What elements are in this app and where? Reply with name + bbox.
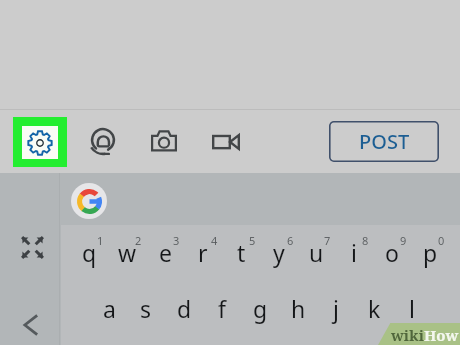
staticText: d	[177, 293, 192, 324]
button[interactable]: t	[222, 228, 260, 276]
staticText: 1	[97, 233, 104, 248]
button[interactable]: s	[127, 280, 165, 326]
staticText: 8	[362, 233, 369, 248]
staticText: wiki	[391, 325, 424, 345]
staticText: o	[385, 237, 399, 268]
button[interactable]: d	[165, 280, 203, 326]
button[interactable]: Expand keyboard	[13, 228, 51, 266]
staticText: 7	[324, 233, 331, 248]
staticText: u	[309, 237, 324, 268]
staticText: 6	[287, 233, 294, 248]
button[interactable]: h	[279, 280, 317, 326]
staticText: j	[333, 293, 339, 324]
staticText: a	[103, 293, 116, 324]
staticText: 9	[400, 233, 407, 248]
staticText: t	[237, 237, 246, 268]
button[interactable]: g	[241, 280, 279, 326]
button[interactable]: l	[393, 280, 431, 326]
staticText: i	[351, 237, 357, 268]
button[interactable]: Take photo	[147, 124, 181, 158]
staticText: 4	[211, 233, 218, 248]
button[interactable]: k	[355, 280, 393, 326]
staticText: f	[218, 293, 226, 324]
staticText: s	[140, 293, 152, 324]
button[interactable]: q	[70, 228, 108, 276]
staticText: g	[253, 293, 268, 324]
button[interactable]: f	[203, 280, 241, 326]
button[interactable]: Mention someone	[86, 123, 120, 157]
button[interactable]: Google search	[71, 183, 107, 219]
button[interactable]: o	[373, 228, 411, 276]
staticText: 5	[249, 233, 256, 248]
button[interactable]: u	[297, 228, 335, 276]
button[interactable]: j	[317, 280, 355, 326]
button[interactable]: a	[90, 280, 128, 326]
staticText: How	[424, 325, 459, 345]
staticText: q	[82, 237, 97, 268]
button[interactable]: Back	[12, 306, 50, 344]
staticText: h	[291, 293, 306, 324]
button[interactable]: Settings	[13, 117, 67, 167]
staticText: 3	[173, 233, 180, 248]
button[interactable]: y	[260, 228, 298, 276]
staticText: l	[409, 293, 415, 324]
staticText: POST	[359, 128, 410, 155]
button[interactable]: r	[184, 228, 222, 276]
button[interactable]: i	[335, 228, 373, 276]
button[interactable]: POST	[329, 121, 439, 162]
staticText: y	[273, 237, 285, 268]
staticText: 0	[438, 233, 445, 248]
staticText: r	[198, 237, 208, 268]
button[interactable]: Record video	[209, 125, 243, 159]
staticText: k	[368, 293, 381, 324]
staticText: 2	[135, 233, 142, 248]
staticText: p	[423, 237, 438, 268]
button[interactable]: e	[146, 228, 184, 276]
staticText: w	[118, 237, 137, 268]
staticText: e	[159, 237, 172, 268]
button[interactable]: w	[108, 228, 146, 276]
button[interactable]: p	[411, 228, 449, 276]
